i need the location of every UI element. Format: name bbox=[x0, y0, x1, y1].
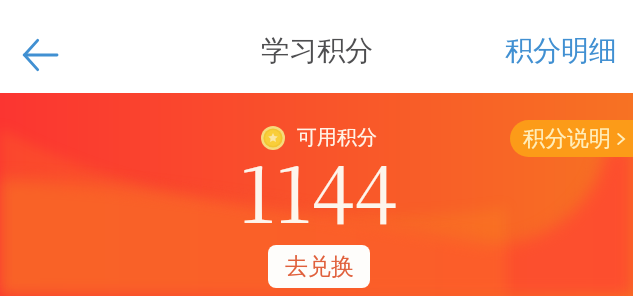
staticText: 可用积分 bbox=[297, 125, 377, 150]
staticText: 1144 bbox=[239, 134, 398, 245]
staticText: 学习积分 bbox=[261, 33, 373, 68]
staticText: 去兑换 bbox=[285, 252, 354, 281]
button[interactable]: 积分说明 bbox=[510, 120, 633, 157]
button[interactable]: 去兑换 bbox=[268, 245, 370, 288]
staticText: 积分明细 bbox=[505, 33, 617, 68]
button[interactable]: 积分明细 bbox=[489, 21, 633, 80]
staticText: 积分说明 bbox=[523, 125, 611, 153]
button[interactable]: Back bbox=[8, 23, 72, 87]
